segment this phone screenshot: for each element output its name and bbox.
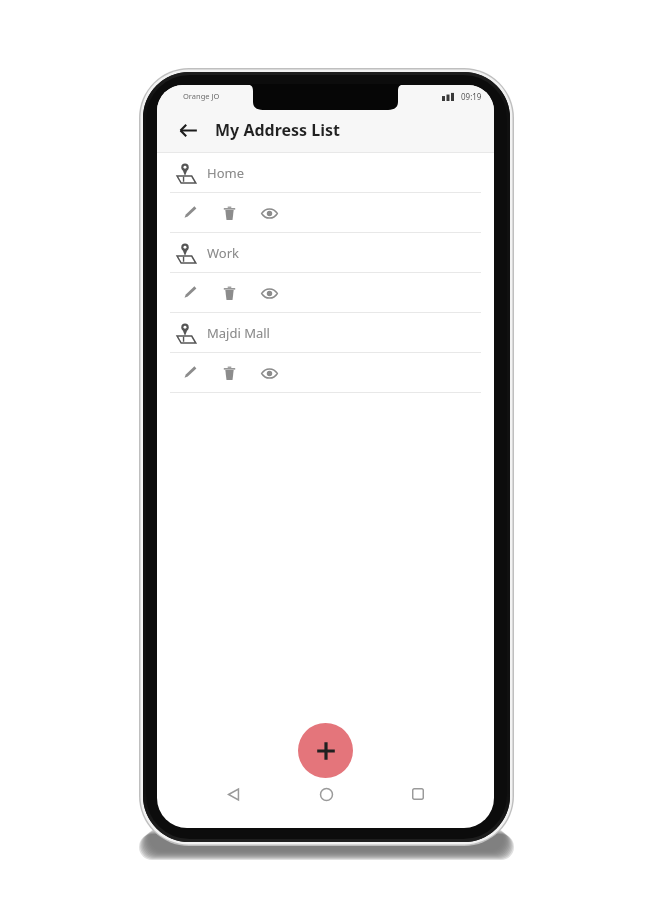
button[interactable]: View — [255, 359, 283, 387]
button[interactable]: Delete — [215, 199, 243, 227]
staticText: Orange JO — [183, 91, 220, 101]
button[interactable]: Recents — [401, 777, 435, 811]
button[interactable]: Delete — [215, 279, 243, 307]
button[interactable]: Edit — [175, 199, 203, 227]
staticText: 09:19 — [461, 91, 482, 102]
button[interactable]: Work — [157, 233, 494, 272]
button[interactable]: Back — [216, 777, 250, 811]
staticText: Home — [207, 164, 244, 182]
button[interactable]: View — [255, 199, 283, 227]
button[interactable]: Home — [157, 153, 494, 192]
button[interactable]: Edit — [175, 279, 203, 307]
button[interactable]: Delete — [215, 359, 243, 387]
button[interactable]: Home — [309, 777, 343, 811]
button[interactable]: Edit — [175, 359, 203, 387]
staticText: Work — [207, 244, 240, 262]
button[interactable]: Back — [171, 113, 205, 147]
button[interactable]: Majdi Mall — [157, 313, 494, 352]
button[interactable]: View — [255, 279, 283, 307]
button[interactable]: Add address — [298, 723, 353, 778]
staticText: Majdi Mall — [207, 324, 270, 342]
staticText: My Address List — [215, 119, 340, 141]
